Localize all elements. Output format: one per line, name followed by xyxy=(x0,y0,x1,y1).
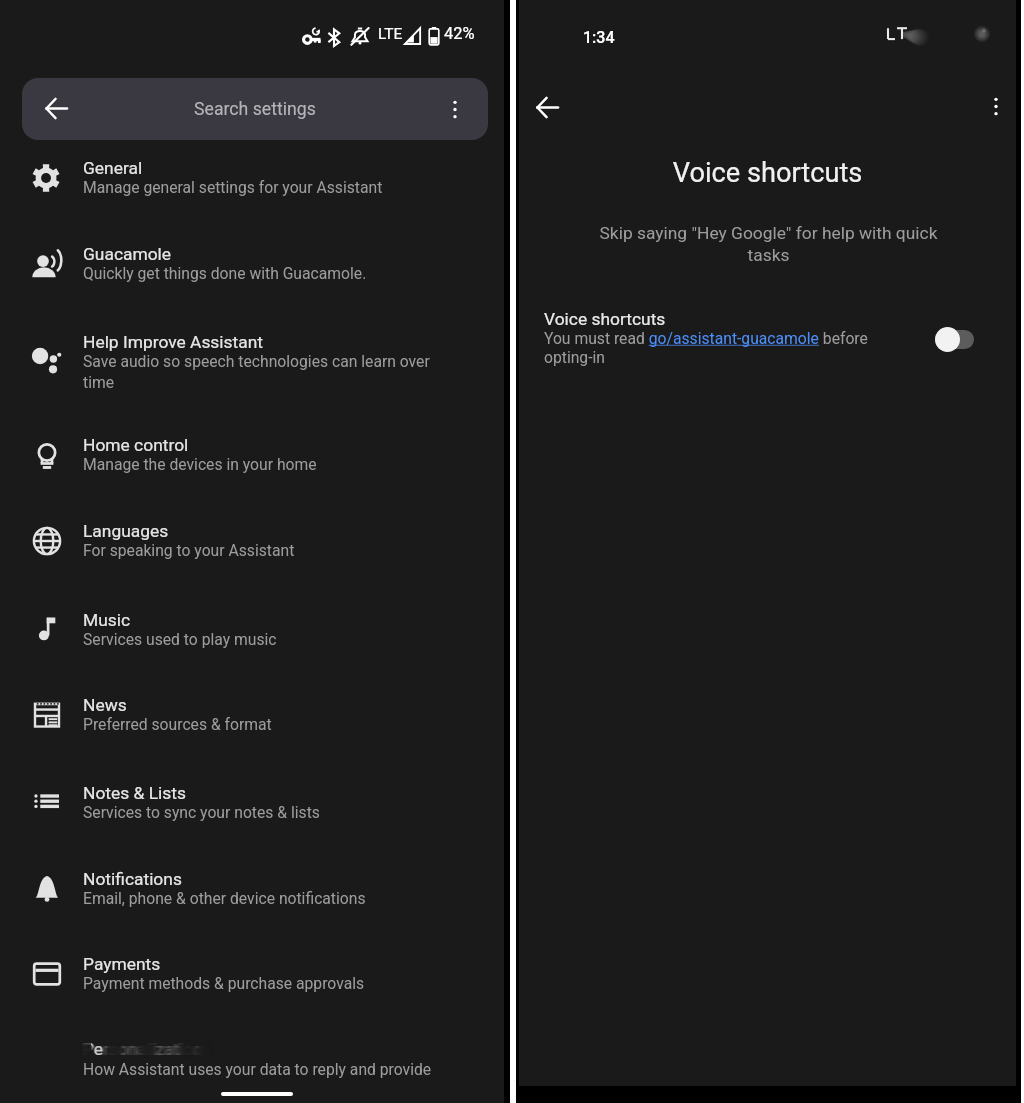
button[interactable]: Home control xyxy=(0,435,504,473)
button[interactable]: Back xyxy=(536,96,559,119)
button[interactable]: Payments xyxy=(0,954,504,992)
staticText: Preferred sources & format xyxy=(83,715,272,733)
button[interactable]: Notifications xyxy=(0,869,504,907)
button[interactable]: Help Improve Assistant xyxy=(0,332,504,391)
staticText: Save audio so speech technologies can le… xyxy=(83,352,443,391)
staticText: Voice shortcuts xyxy=(544,309,666,329)
staticText: Notifications xyxy=(83,869,182,889)
button[interactable]: Back xyxy=(22,78,488,140)
staticText: Search settings xyxy=(194,99,316,120)
staticText: Quickly get things done with Guacamole. xyxy=(83,264,367,282)
staticText: Email, phone & other device notification… xyxy=(83,889,366,907)
staticText: Languages xyxy=(83,521,169,541)
staticText: 42% xyxy=(444,24,475,43)
staticText: How Assistant uses your data to reply an… xyxy=(83,1060,432,1078)
staticText: Payments xyxy=(83,954,161,974)
staticText: You must read go/assistant-guacamole bef… xyxy=(544,329,876,367)
button[interactable]: Languages xyxy=(0,521,504,559)
button[interactable]: News xyxy=(0,695,504,733)
button[interactable]: Music xyxy=(0,610,504,648)
button[interactable]: General xyxy=(0,158,504,196)
staticText: Personalization xyxy=(83,1039,203,1059)
button[interactable]: Personalization xyxy=(0,1039,504,1078)
button[interactable]: Voice shortcuts xyxy=(519,308,1016,383)
staticText: Manage general settings for your Assista… xyxy=(83,178,383,196)
staticText: Services used to play music xyxy=(83,630,277,648)
staticText: Voice shortcuts xyxy=(519,157,1016,189)
staticText: Personalization xyxy=(84,1039,204,1059)
staticText: Personalization xyxy=(82,1039,202,1059)
staticText: Payment methods & purchase approvals xyxy=(83,974,365,992)
other: Back xyxy=(45,97,68,120)
button[interactable]: Guacamole xyxy=(0,244,504,282)
staticText: Music xyxy=(83,610,131,630)
staticText: 1:34 xyxy=(583,28,615,47)
staticText: LTE xyxy=(378,25,403,43)
staticText: News xyxy=(83,695,127,715)
staticText: Guacamole xyxy=(83,244,172,264)
staticText: Notes & Lists xyxy=(83,783,186,803)
staticText: Personalization xyxy=(81,1039,201,1059)
staticText: General xyxy=(83,158,143,178)
staticText: Skip saying "Hey Google" for help with q… xyxy=(593,223,944,265)
button[interactable]: More options xyxy=(988,96,1004,117)
staticText: Home control xyxy=(83,435,189,455)
button[interactable]: Notes & Lists xyxy=(0,783,504,821)
other: More options xyxy=(447,99,463,120)
staticText: Help Improve Assistant xyxy=(83,332,263,352)
staticText: For speaking to your Assistant xyxy=(83,541,295,559)
staticText: Services to sync your notes & lists xyxy=(83,803,320,821)
staticText: Personalization xyxy=(85,1039,205,1059)
staticText: Personalization xyxy=(91,1039,105,1060)
staticText: Manage the devices in your home xyxy=(83,455,317,473)
